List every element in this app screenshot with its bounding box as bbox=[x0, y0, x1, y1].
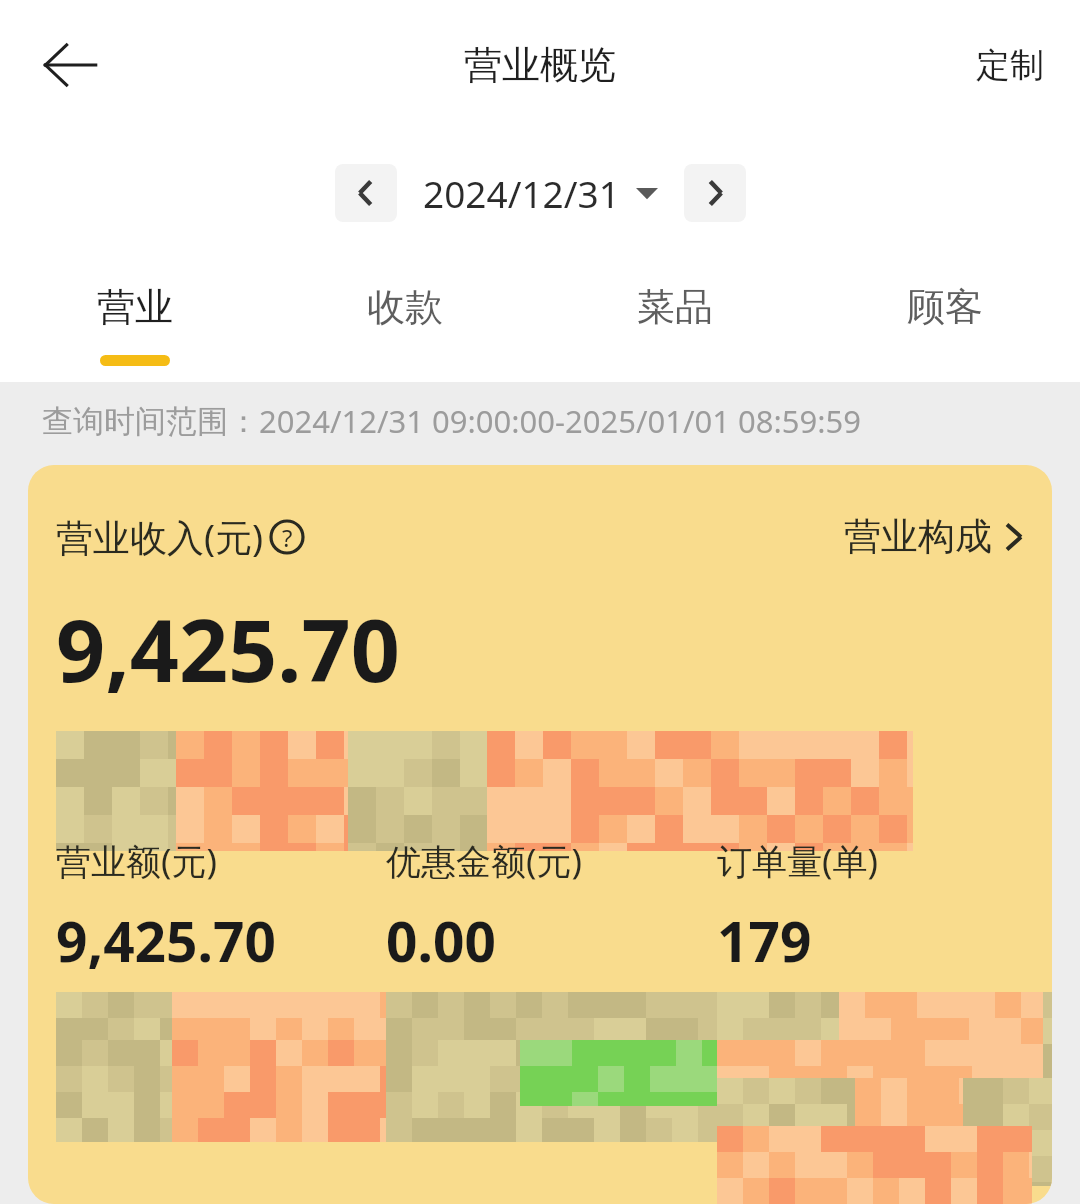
button[interactable]: 顾客 bbox=[810, 255, 1080, 382]
other: Help bbox=[268, 518, 306, 556]
button[interactable]: Previous day bbox=[335, 164, 397, 222]
staticText: 9,425.70 bbox=[56, 590, 400, 707]
staticText: 2024/12/31 bbox=[423, 168, 620, 218]
staticText: 营业额(元) bbox=[56, 837, 218, 885]
button[interactable]: 营业收入(元) bbox=[56, 511, 306, 562]
button[interactable]: 营业额(元) bbox=[56, 837, 386, 1074]
staticText: 营业构成 bbox=[844, 513, 992, 560]
button[interactable]: Next day bbox=[684, 164, 746, 222]
button[interactable]: Back bbox=[28, 23, 112, 107]
button[interactable]: 菜品 bbox=[540, 255, 810, 382]
staticText: 2024/12/31 09:00:00-2025/01/01 08:59:59 bbox=[259, 400, 861, 442]
button[interactable]: 定制 bbox=[970, 34, 1050, 97]
button[interactable]: 营业构成 bbox=[844, 507, 1024, 566]
staticText: 菜品 bbox=[637, 283, 713, 331]
staticText: 订单量(单) bbox=[717, 837, 879, 885]
button[interactable]: 2024/12/31 bbox=[397, 160, 684, 226]
staticText: 179 bbox=[717, 903, 812, 978]
button[interactable]: 营业 bbox=[0, 255, 270, 382]
staticText: 优惠金额(元) bbox=[386, 837, 583, 885]
button[interactable]: 优惠金额(元) bbox=[386, 837, 717, 1074]
staticText: 收款 bbox=[367, 283, 443, 331]
staticText: 查询时间范围： bbox=[42, 402, 259, 441]
staticText: ? bbox=[282, 521, 293, 554]
staticText: 营业概览 bbox=[464, 41, 616, 89]
staticText: 顾客 bbox=[907, 283, 983, 331]
staticText: 营业 bbox=[97, 283, 173, 331]
staticText: 营业收入(元) bbox=[56, 511, 264, 562]
button[interactable]: 收款 bbox=[270, 255, 540, 382]
button[interactable]: 订单量(单) bbox=[717, 837, 1032, 1152]
staticText: 9,425.70 bbox=[56, 903, 276, 978]
staticText: 0.00 bbox=[386, 903, 496, 978]
staticText: 定制 bbox=[976, 44, 1044, 87]
